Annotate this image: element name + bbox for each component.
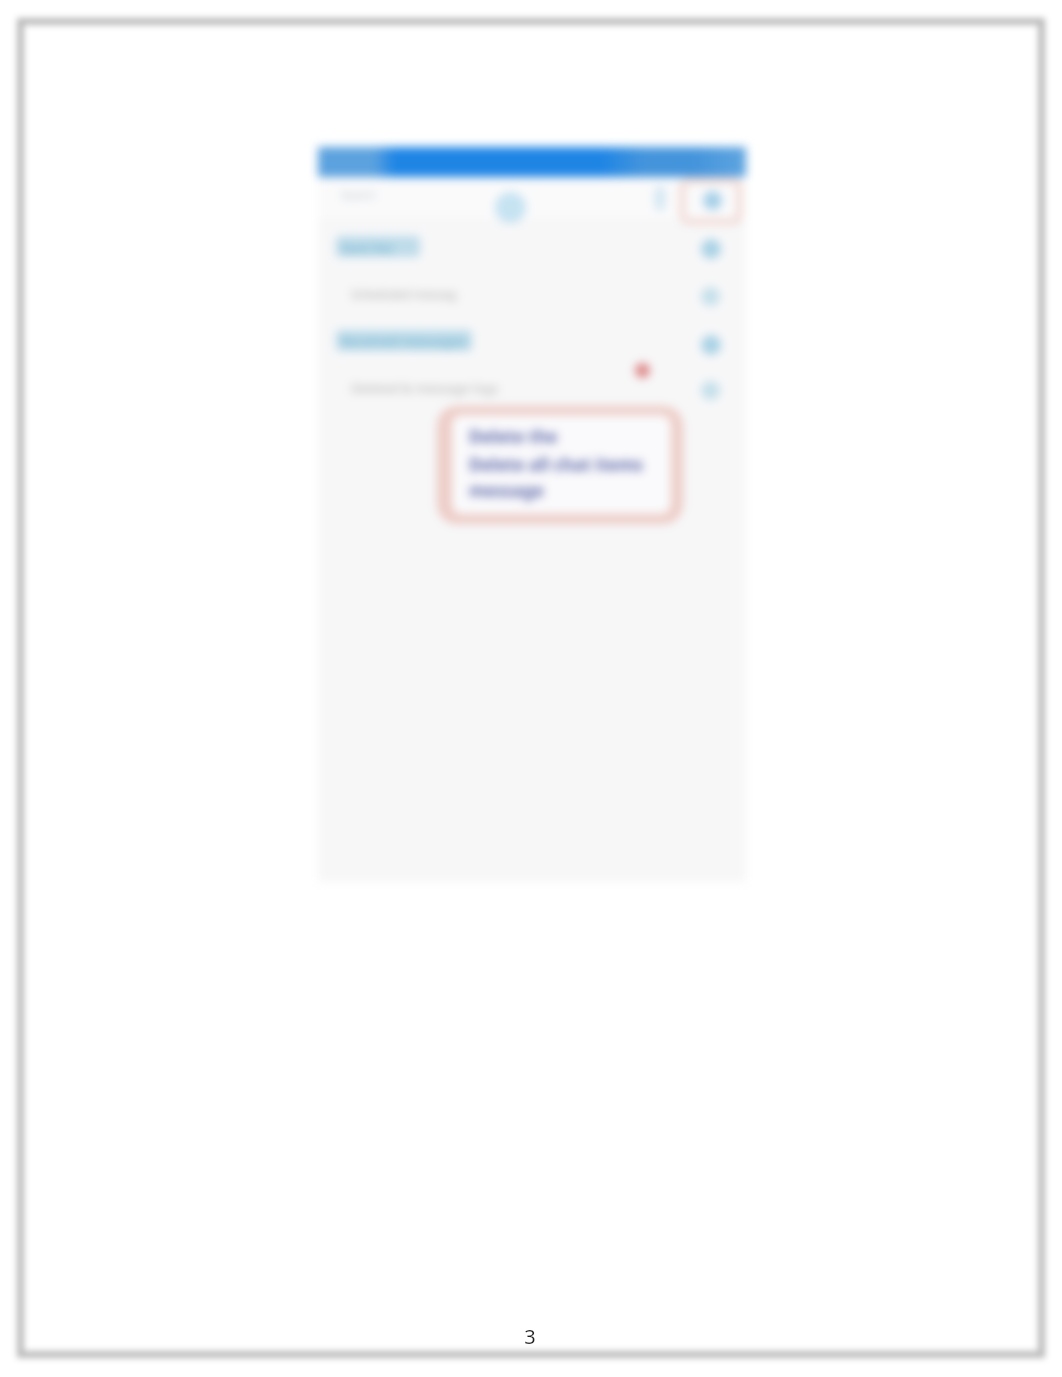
button[interactable]: Add bbox=[487, 184, 533, 230]
button[interactable]: Deleted and message logs bbox=[318, 368, 746, 415]
staticText: Delete the bbox=[469, 425, 558, 448]
staticText: Sent list bbox=[341, 239, 394, 257]
button[interactable]: Sent list bbox=[318, 225, 746, 272]
staticText: 3 bbox=[514, 1323, 546, 1350]
button[interactable]: More options bbox=[680, 178, 742, 224]
staticText: Delete all chat items bbox=[469, 453, 644, 476]
staticText: Deleted & message logs bbox=[351, 379, 499, 397]
button[interactable]: Scheduled messages bbox=[318, 272, 746, 319]
staticText: message bbox=[469, 479, 544, 502]
button[interactable]: Received messages bbox=[318, 321, 746, 368]
staticText: Scheduled messag bbox=[351, 286, 457, 302]
staticText: Received messages bbox=[341, 332, 467, 350]
